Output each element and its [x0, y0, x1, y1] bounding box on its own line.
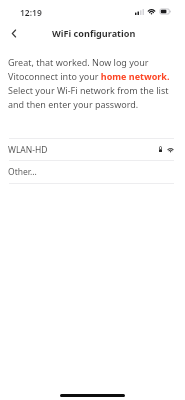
staticText: 12:19: [20, 7, 42, 19]
staticText: WiFi configuration: [52, 27, 136, 39]
staticText: Great, that worked. Now log your Vitocon…: [8, 56, 177, 111]
button[interactable]: Back: [2, 23, 26, 43]
staticText: Other...: [8, 166, 37, 178]
button[interactable]: WLAN-HD: [0, 139, 185, 160]
staticText: WLAN-HD: [8, 144, 48, 156]
button[interactable]: Other...: [0, 161, 185, 183]
